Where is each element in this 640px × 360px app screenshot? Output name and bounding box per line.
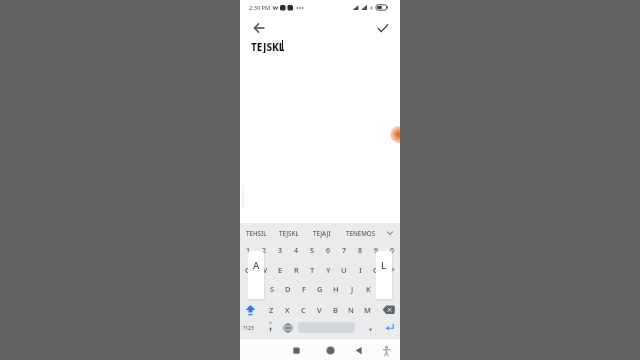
staticText: 4: [294, 246, 299, 256]
button[interactable]: J: [332, 281, 372, 297]
button[interactable]: E: [260, 262, 300, 278]
button[interactable]: TEJSKL: [273, 225, 305, 241]
staticText: 9: [374, 246, 379, 256]
staticText: H: [333, 284, 339, 294]
staticText: 2:30 PM: [249, 4, 271, 12]
button[interactable]: C: [283, 302, 323, 318]
staticText: 6: [326, 246, 331, 256]
staticText: E: [278, 265, 283, 275]
button[interactable]: Q: [240, 262, 268, 278]
button[interactable]: [324, 344, 337, 357]
staticText: 2: [262, 246, 267, 256]
staticText: 7: [342, 246, 347, 256]
staticText: A: [253, 259, 260, 272]
staticText: TEJSKL: [279, 229, 299, 237]
button[interactable]: F: [284, 281, 324, 297]
staticText: C: [301, 305, 306, 315]
button[interactable]: [290, 344, 303, 357]
staticText: G: [317, 284, 323, 294]
staticText: P: [390, 265, 395, 275]
button[interactable]: D: [268, 281, 308, 297]
staticText: K: [366, 284, 371, 294]
staticText: 5: [310, 246, 315, 256]
staticText: Y: [326, 265, 331, 275]
staticText: 0: [390, 246, 395, 256]
button[interactable]: TENEMOS: [345, 225, 377, 241]
staticText: 3: [278, 246, 283, 256]
button[interactable]: X: [267, 302, 307, 318]
staticText: O: [373, 265, 379, 275]
staticText: S: [270, 284, 275, 294]
staticText: TEJAJI: [313, 229, 331, 237]
button[interactable]: M: [347, 302, 387, 318]
button[interactable]: W: [244, 262, 284, 278]
staticText: X: [285, 305, 290, 315]
staticText: 1: [246, 246, 251, 256]
staticText: U: [341, 265, 347, 275]
button[interactable]: 9: [356, 243, 396, 259]
button[interactable]: [374, 19, 392, 37]
button[interactable]: Z: [251, 302, 291, 318]
button[interactable]: TEHSIL: [240, 225, 272, 241]
staticText: ?123: [243, 325, 254, 332]
staticText: F: [302, 284, 306, 294]
staticText: V: [317, 305, 322, 315]
button[interactable]: Y: [308, 262, 348, 278]
staticText: J: [351, 284, 354, 294]
staticText: R: [294, 265, 299, 275]
staticText: TEHSIL: [246, 229, 267, 237]
button[interactable]: I: [340, 262, 380, 278]
staticText: W: [260, 265, 268, 275]
button[interactable]: G: [300, 281, 340, 297]
button[interactable]: 2: [244, 243, 284, 259]
button[interactable]: K: [348, 281, 388, 297]
staticText: I: [359, 265, 362, 275]
button[interactable]: TEJAJI: [306, 225, 338, 241]
staticText: N: [348, 305, 354, 315]
button[interactable]: 3: [260, 243, 300, 259]
staticText: T: [310, 265, 315, 275]
button[interactable]: U: [324, 262, 364, 278]
button[interactable]: N: [331, 302, 371, 318]
staticText: 8: [358, 246, 363, 256]
button[interactable]: [243, 303, 258, 317]
button[interactable]: 1: [240, 243, 268, 259]
staticText: L: [381, 259, 387, 272]
button[interactable]: 8: [340, 243, 380, 259]
button[interactable]: 6: [308, 243, 348, 259]
button[interactable]: [381, 303, 397, 317]
button[interactable]: S: [252, 281, 292, 297]
button[interactable]: V: [299, 302, 339, 318]
button[interactable]: A: [240, 281, 276, 297]
staticText: TEJSKL: [251, 40, 285, 53]
button[interactable]: H: [316, 281, 356, 297]
button[interactable]: O: [356, 262, 396, 278]
button[interactable]: 7: [324, 243, 364, 259]
staticText: TENEMOS: [346, 229, 376, 237]
staticText: Z: [269, 305, 274, 315]
button[interactable]: T: [292, 262, 332, 278]
button[interactable]: 4: [276, 243, 316, 259]
button[interactable]: [352, 344, 365, 357]
button[interactable]: 5: [292, 243, 332, 259]
staticText: Q: [245, 265, 251, 275]
button[interactable]: 0: [372, 243, 400, 259]
staticText: B: [333, 305, 338, 315]
staticText: M: [364, 305, 371, 315]
staticText: D: [285, 284, 291, 294]
button[interactable]: B: [315, 302, 355, 318]
button[interactable]: P: [372, 262, 400, 278]
button[interactable]: [250, 19, 268, 37]
button[interactable]: L: [364, 281, 400, 297]
button[interactable]: ?123: [240, 320, 268, 336]
button[interactable]: R: [276, 262, 316, 278]
